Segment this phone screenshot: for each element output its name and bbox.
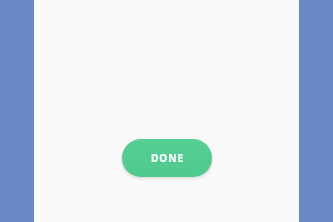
button[interactable]: DONE [122, 139, 212, 177]
staticText: DONE [151, 151, 184, 165]
